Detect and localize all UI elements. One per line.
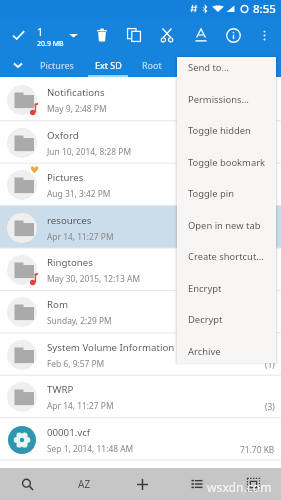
staticText: Oxford — [47, 129, 79, 142]
button[interactable]: 00001.vcf — [0, 418, 281, 461]
button[interactable]: Create shortcut… — [177, 241, 276, 272]
button[interactable]: Clear selection — [4, 21, 32, 49]
button[interactable]: Oxford — [0, 121, 281, 164]
staticText: wsxdn.com — [207, 479, 272, 496]
staticText: 1 — [37, 24, 44, 39]
button[interactable]: Decrypt — [177, 304, 276, 335]
button[interactable]: Toggle pin — [177, 178, 276, 209]
button[interactable]: Add — [126, 468, 158, 500]
staticText: Pictures — [40, 59, 74, 71]
staticText: (1) — [265, 359, 275, 370]
staticText: Encrypt — [188, 282, 222, 295]
staticText: Sep 1, 2014, 11:48 AM — [47, 443, 134, 454]
button[interactable]: Root — [135, 52, 169, 77]
staticText: Feb 6, 9:57 PM — [47, 358, 105, 369]
staticText: Create shortcut… — [188, 250, 264, 263]
button[interactable]: Cut — [153, 21, 181, 49]
button[interactable]: Select all — [237, 468, 269, 500]
button[interactable]: Ringtones — [0, 248, 281, 291]
staticText: 71.70 KB — [240, 444, 275, 455]
staticText: Decrypt — [188, 313, 223, 326]
staticText: Toggle hidden — [188, 124, 251, 137]
button[interactable]: Open in new tab — [177, 210, 276, 241]
staticText: Pictures — [47, 171, 84, 184]
staticText: May 30, 2015, 12:13 AM — [47, 273, 141, 284]
button[interactable]: TWRP — [0, 375, 281, 418]
staticText: Jun 10, 2014, 8:28 PM — [47, 146, 132, 157]
button[interactable]: Toggle hidden — [177, 115, 276, 146]
button[interactable]: Pictures — [33, 52, 81, 77]
staticText: Ringtones — [47, 256, 93, 269]
staticText: Notifications — [47, 86, 105, 99]
staticText: Permissions… — [188, 93, 249, 106]
button[interactable]: Copy — [120, 21, 148, 49]
button[interactable]: Rename — [187, 21, 215, 49]
staticText: 20.9 MB — [37, 39, 64, 49]
button[interactable]: List view — [181, 468, 213, 500]
staticText: AZ — [78, 477, 91, 491]
button[interactable]: System Volume Information — [0, 333, 281, 376]
staticText: (3) — [265, 401, 275, 412]
staticText: Toggle pin — [188, 187, 234, 200]
staticText: Aug 31, 3:42 PM — [47, 188, 111, 199]
staticText: TWRP — [47, 383, 74, 396]
staticText: Toggle bookmark — [188, 156, 266, 169]
staticText: Open in new tab — [188, 219, 261, 232]
staticText: Apr 14, 11:27 PM — [47, 231, 114, 242]
staticText: 00001.vcf — [47, 426, 91, 439]
button[interactable]: Search — [11, 468, 43, 500]
button[interactable]: Notifications — [0, 78, 281, 121]
staticText: Archive — [188, 345, 221, 358]
button[interactable]: Ext SD — [81, 52, 135, 77]
button[interactable]: Rom — [0, 290, 281, 333]
button[interactable]: Sort — [68, 468, 100, 500]
staticText: 8:55 — [253, 1, 276, 17]
staticText: Ext SD — [95, 59, 122, 71]
button[interactable]: Archive — [177, 336, 276, 363]
button[interactable]: resources — [0, 206, 281, 249]
button[interactable]: More options — [250, 21, 278, 49]
staticText: System Volume Information — [47, 341, 175, 354]
staticText: Sunday, 2:29 PM — [47, 315, 112, 326]
staticText: Rom — [47, 298, 68, 311]
button[interactable]: Pictures — [0, 163, 281, 206]
button[interactable]: Send to… — [177, 57, 276, 83]
staticText: Send to… — [188, 61, 229, 74]
staticText: May 9, 2:48 PM — [47, 103, 107, 114]
button[interactable]: Show tab list — [4, 52, 32, 77]
button[interactable]: Selection menu — [59, 21, 87, 49]
button[interactable]: Encrypt — [177, 273, 276, 304]
button[interactable]: Info — [219, 21, 247, 49]
button[interactable]: Permissions… — [177, 84, 276, 115]
staticText: Root — [142, 59, 162, 71]
staticText: resources — [47, 214, 92, 227]
staticText: Apr 14, 11:27 PM — [47, 400, 114, 411]
button[interactable]: Delete — [88, 21, 116, 49]
button[interactable]: Toggle bookmark — [177, 147, 276, 178]
